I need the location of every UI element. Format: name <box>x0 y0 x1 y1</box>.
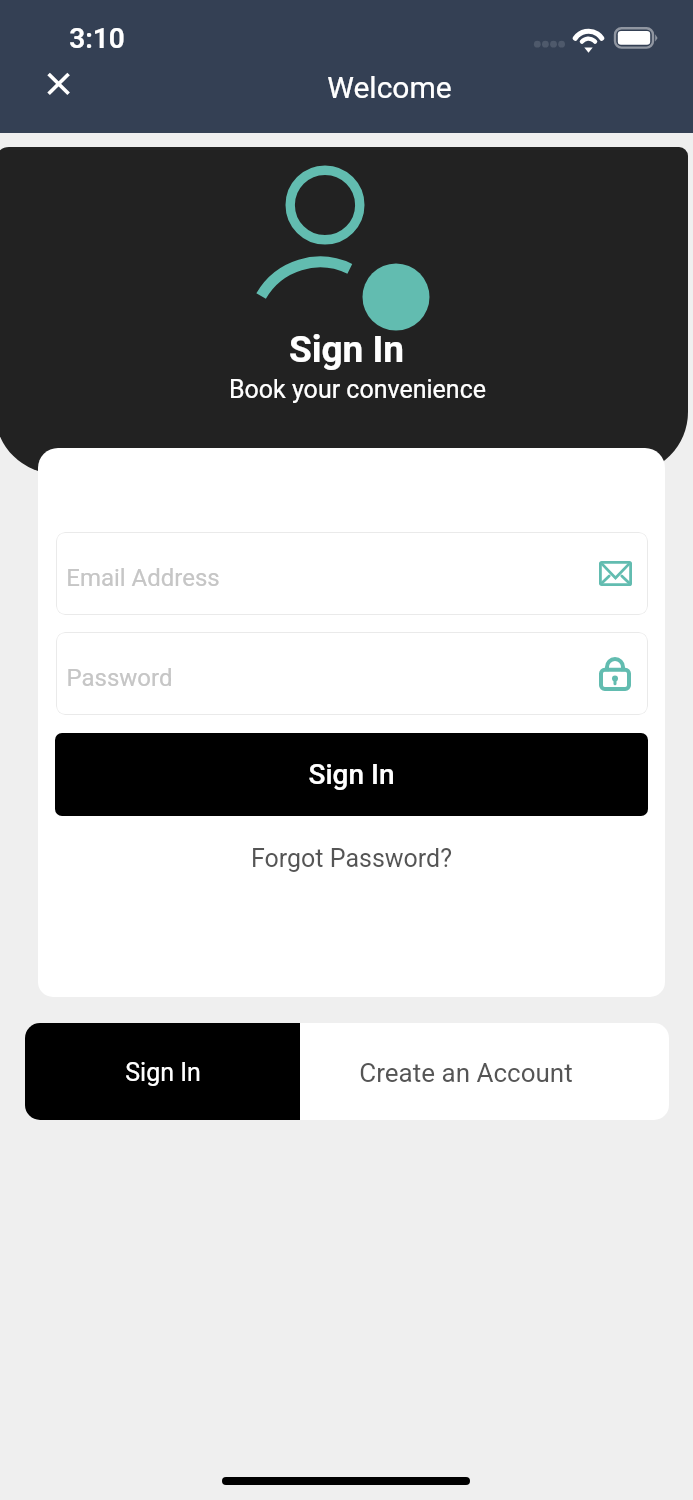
staticText: Welcome <box>327 70 452 105</box>
staticText: Forgot Password? <box>251 844 452 873</box>
staticText: Create an Account <box>359 1058 573 1088</box>
staticText: 3:10 <box>69 22 125 55</box>
staticText: Email Address <box>66 564 220 592</box>
staticText: Book your convenience <box>11 375 688 404</box>
button[interactable]: Create an Account <box>300 1023 669 1120</box>
button[interactable]: Sign In <box>25 1023 300 1120</box>
button[interactable]: Password <box>56 632 648 715</box>
button[interactable]: Email Address <box>56 532 648 615</box>
button[interactable]: Close <box>37 63 80 106</box>
staticText: Sign In <box>308 758 395 791</box>
staticText: Password <box>66 664 173 692</box>
button[interactable]: Sign In <box>55 733 648 816</box>
staticText: Sign In <box>125 1058 201 1087</box>
staticText: Sign In <box>0 328 688 371</box>
button[interactable]: Forgot Password? <box>38 832 665 884</box>
